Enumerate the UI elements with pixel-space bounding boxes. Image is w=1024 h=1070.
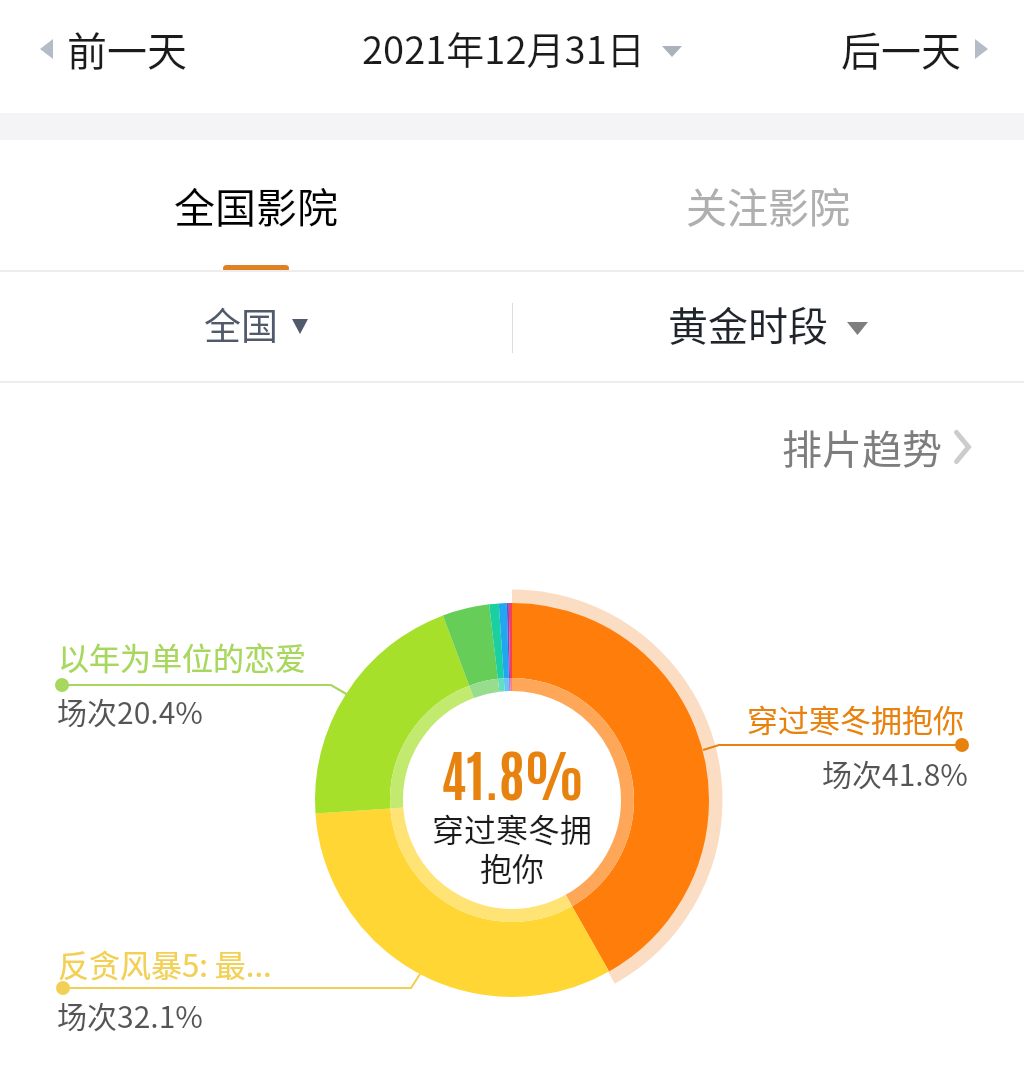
staticText: 41.8%	[441, 736, 584, 807]
staticText: 反贪风暴5: 最...	[58, 941, 272, 986]
staticText: 关注影院	[686, 175, 850, 234]
staticText: 全国影院	[174, 175, 338, 234]
button[interactable]: 全国影院	[0, 140, 512, 272]
staticText: 场次32.1%	[57, 993, 203, 1036]
staticText: 前一天	[67, 20, 187, 78]
button[interactable]: 黄金时段	[512, 272, 1024, 384]
staticText: 排片趋势	[782, 418, 942, 476]
staticText: 穿过寒冬拥抱你	[747, 696, 964, 741]
button[interactable]: 全国	[0, 272, 512, 384]
button[interactable]: 前一天	[40, 20, 187, 78]
button[interactable]: 关注影院	[512, 140, 1024, 272]
button[interactable]: 2021年12月31日	[362, 20, 682, 75]
staticText: 场次20.4%	[57, 689, 203, 732]
staticText: 场次41.8%	[822, 751, 968, 794]
staticText: 穿过寒冬拥抱你	[432, 805, 592, 890]
staticText: 全国	[204, 297, 278, 351]
staticText: 黄金时段	[668, 295, 828, 353]
staticText: 以年为单位的恋爱	[58, 634, 306, 679]
other: 排片趋势	[954, 430, 971, 464]
staticText: 2021年12月31日	[362, 20, 645, 75]
staticText: 后一天	[841, 20, 961, 78]
button[interactable]: 排片趋势	[782, 418, 971, 476]
button[interactable]: 后一天	[841, 20, 988, 78]
